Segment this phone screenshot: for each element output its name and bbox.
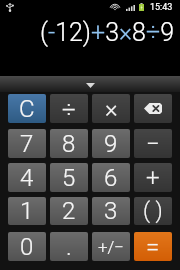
staticText: +: [146, 164, 160, 192]
staticText: 1: [20, 197, 34, 225]
staticText: 7: [20, 130, 34, 158]
staticText: 15:43: [150, 2, 173, 13]
button[interactable]: −: [134, 129, 172, 158]
button[interactable]: 5: [50, 163, 88, 192]
button[interactable]: 9: [92, 129, 130, 158]
button[interactable]: ( ): [134, 197, 172, 225]
staticText: 3: [104, 197, 118, 225]
button[interactable]: =: [134, 232, 172, 261]
button[interactable]: 8: [50, 129, 88, 158]
button[interactable]: Delete: [134, 94, 172, 123]
button[interactable]: C: [8, 94, 46, 123]
staticText: 9: [104, 130, 118, 158]
button[interactable]: +: [134, 163, 172, 192]
staticText: C: [19, 95, 35, 123]
staticText: 8: [62, 130, 76, 158]
button[interactable]: 3: [92, 197, 130, 225]
button[interactable]: 1: [8, 197, 46, 225]
staticText: 6: [104, 164, 118, 192]
staticText: ÷: [62, 95, 76, 123]
staticText: (-12)+3×8÷9: [40, 18, 175, 47]
staticText: 4: [20, 164, 34, 192]
button[interactable]: ÷: [50, 94, 88, 123]
button[interactable]: ×: [92, 94, 130, 123]
button[interactable]: 6: [92, 163, 130, 192]
button[interactable]: 7: [8, 129, 46, 158]
button[interactable]: +/−: [92, 232, 130, 261]
staticText: +/−: [98, 237, 125, 257]
staticText: ( ): [143, 198, 163, 224]
staticText: 5: [62, 164, 76, 192]
staticText: −: [146, 130, 160, 158]
staticText: =: [146, 233, 160, 261]
staticText: ×: [105, 95, 118, 123]
staticText: 0: [20, 233, 34, 261]
staticText: 2: [62, 197, 76, 225]
button[interactable]: 2: [50, 197, 88, 225]
button[interactable]: .: [50, 232, 88, 261]
button[interactable]: 0: [8, 232, 46, 261]
staticText: .: [66, 233, 72, 261]
button[interactable]: 4: [8, 163, 46, 192]
